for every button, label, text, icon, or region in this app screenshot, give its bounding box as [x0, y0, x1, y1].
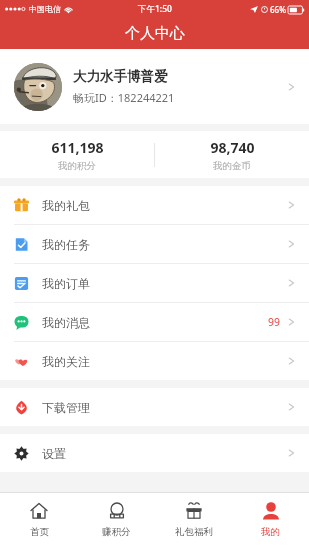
button[interactable]: 我的消息	[0, 303, 309, 341]
button[interactable]: 大力水手博普爱	[0, 49, 309, 124]
other: 礼包福利	[184, 501, 204, 521]
button[interactable]: 我的任务	[0, 225, 309, 263]
button[interactable]: 我的礼包	[0, 186, 309, 224]
button[interactable]: 我的	[232, 493, 309, 550]
staticText: 设置	[42, 446, 288, 461]
staticText: 赚积分	[102, 526, 131, 538]
staticText: 大力水手博普爱	[73, 68, 168, 85]
staticText: 我的订单	[42, 276, 288, 291]
staticText: 我的金币	[213, 160, 251, 172]
staticText: 我的礼包	[42, 198, 288, 213]
button[interactable]: 98,740	[155, 131, 309, 178]
button[interactable]: 下载管理	[0, 388, 309, 426]
staticText: 礼包福利	[175, 526, 213, 538]
staticText: 下午1:50	[138, 3, 172, 15]
button[interactable]: 礼包福利	[155, 493, 232, 550]
button[interactable]: 我的关注	[0, 342, 309, 380]
staticText: 我的任务	[42, 237, 288, 252]
staticText: 个人中心	[125, 24, 185, 43]
other: 首页	[29, 501, 49, 521]
button[interactable]: 611,198	[0, 131, 154, 178]
staticText: 611,198	[51, 138, 104, 157]
other: 赚积分	[107, 501, 127, 521]
staticText: 首页	[30, 526, 49, 538]
staticText: 我的关注	[42, 354, 288, 369]
button[interactable]: 设置	[0, 434, 309, 472]
staticText: 中国电信	[29, 4, 61, 14]
button[interactable]: 我的订单	[0, 264, 309, 302]
staticText: 下载管理	[42, 400, 288, 415]
staticText: 我的积分	[58, 160, 96, 172]
button[interactable]: 赚积分	[78, 493, 155, 550]
staticText: 66%	[270, 4, 286, 15]
button[interactable]: 首页	[0, 493, 78, 550]
staticText: 畅玩ID：182244221	[73, 90, 175, 105]
staticText: 我的	[261, 526, 280, 538]
staticText: 98,740	[210, 138, 255, 157]
staticText: 99	[268, 315, 281, 329]
other: 我的	[261, 501, 281, 521]
staticText: 我的消息	[42, 315, 268, 330]
